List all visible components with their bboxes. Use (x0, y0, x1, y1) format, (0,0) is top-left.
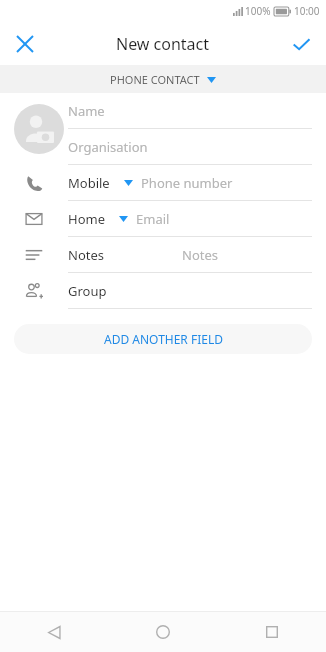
staticText: Home (68, 210, 105, 228)
button[interactable]: Group (0, 273, 326, 309)
button[interactable]: Notes (0, 237, 326, 273)
button[interactable]: Add photo (14, 104, 64, 154)
button[interactable]: PHONE CONTACT (0, 65, 326, 93)
staticText: Notes (68, 246, 104, 264)
button[interactable]: Name (0, 93, 326, 129)
staticText: Notes (182, 246, 218, 264)
staticText: Organisation (68, 138, 148, 156)
button[interactable]: Home (0, 201, 326, 237)
staticText: Group (68, 282, 107, 300)
button[interactable]: Home (108, 612, 217, 652)
staticText: Phone number (141, 174, 233, 192)
staticText: Mobile (68, 174, 110, 192)
staticText: 100% (245, 4, 271, 18)
staticText: PHONE CONTACT (110, 72, 200, 87)
staticText: Name (68, 102, 105, 120)
button[interactable]: Organisation (0, 129, 326, 165)
button[interactable]: Close (8, 27, 42, 61)
staticText: ADD ANOTHER FIELD (104, 331, 223, 347)
staticText: Email (136, 210, 170, 228)
button[interactable]: Save (284, 27, 318, 61)
button[interactable]: ADD ANOTHER FIELD (14, 324, 312, 354)
button[interactable]: Back (0, 612, 108, 652)
staticText: 10:00 (294, 4, 320, 18)
button[interactable]: Recent apps (217, 612, 326, 652)
button[interactable]: Mobile (0, 165, 326, 201)
staticText: New contact (116, 33, 210, 55)
